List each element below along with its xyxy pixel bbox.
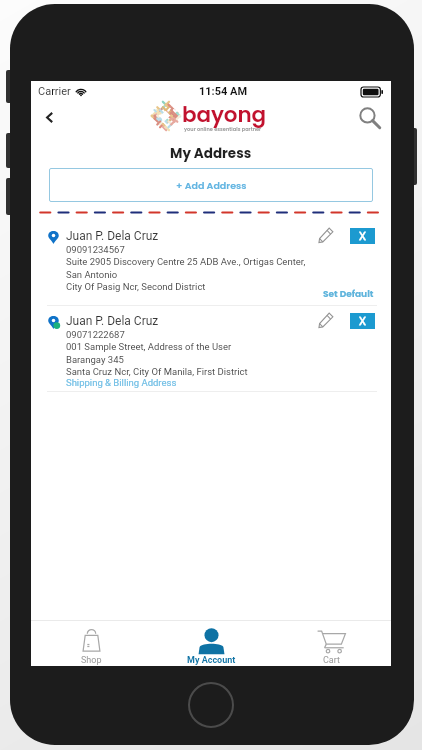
- staticText: 001 Sample Street, Address of the User: [66, 341, 232, 352]
- button[interactable]: Delete address: [350, 313, 375, 329]
- staticText: My Address: [170, 144, 252, 162]
- button[interactable]: Edit address: [314, 223, 338, 247]
- button[interactable]: Juan P. Dela Cruz: [31, 313, 391, 398]
- staticText: bayong: [182, 99, 267, 129]
- button[interactable]: Shipping & Billing Address: [66, 377, 177, 388]
- staticText: Cart: [323, 655, 340, 666]
- button[interactable]: Search: [356, 104, 384, 132]
- staticText: Santa Cruz Ncr, City Of Manila, First Di…: [66, 366, 248, 377]
- staticText: 11:54 AM: [199, 85, 248, 98]
- staticText: 09091234567: [66, 244, 125, 255]
- staticText: Juan P. Dela Cruz: [66, 314, 159, 328]
- button[interactable]: Back: [35, 103, 64, 132]
- button[interactable]: Edit address: [314, 308, 338, 332]
- button[interactable]: Cart: [271, 620, 391, 666]
- staticText: your online essentials partner: [184, 126, 262, 133]
- staticText: Set Default: [323, 288, 374, 301]
- staticText: City Of Pasig Ncr, Second District: [66, 281, 206, 292]
- button[interactable]: My Account: [151, 620, 271, 666]
- staticText: X: [359, 315, 366, 328]
- button[interactable]: Juan P. Dela Cruz: [31, 228, 391, 313]
- staticText: Suite 2905 Discovery Centre 25 ADB Ave.,…: [66, 256, 306, 267]
- staticText: + Add Address: [176, 179, 247, 192]
- staticText: My Account: [187, 655, 236, 666]
- button[interactable]: Shop: [31, 620, 151, 666]
- staticText: Barangay 345: [66, 354, 124, 365]
- button[interactable]: + Add Address: [49, 168, 373, 202]
- staticText: Juan P. Dela Cruz: [66, 229, 159, 243]
- staticText: X: [359, 230, 366, 243]
- button[interactable]: Delete address: [350, 228, 375, 244]
- staticText: 09071222687: [66, 329, 125, 340]
- staticText: Carrier: [38, 85, 71, 98]
- staticText: Shop: [81, 655, 102, 666]
- staticText: San Antonio: [66, 269, 118, 280]
- button[interactable]: Set Default: [316, 288, 374, 301]
